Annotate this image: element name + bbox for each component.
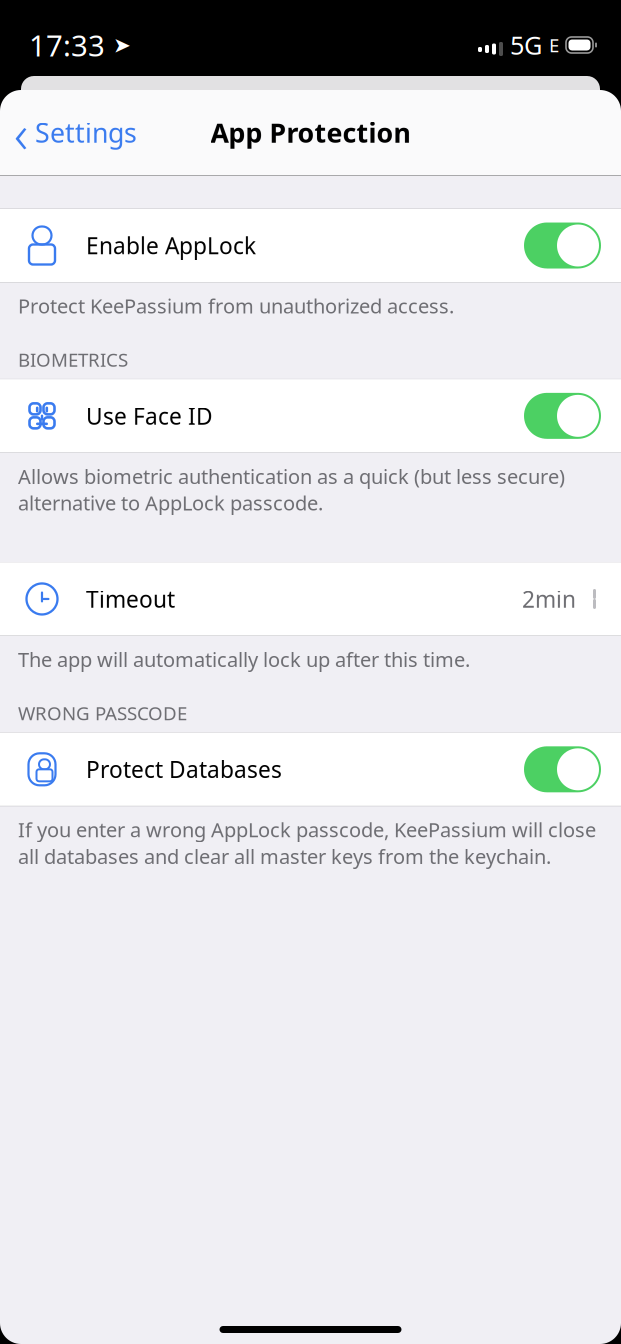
staticText: Use Face ID bbox=[86, 401, 213, 431]
staticText: 5G bbox=[510, 28, 542, 62]
staticText: Protect KeePassium from unauthorized acc… bbox=[18, 292, 454, 319]
button[interactable]: Enable AppLock bbox=[0, 209, 621, 282]
staticText: Timeout bbox=[86, 584, 175, 614]
staticText: Enable AppLock bbox=[86, 230, 256, 260]
button[interactable]: ‹ bbox=[0, 91, 147, 174]
staticText: If you enter a wrong AppLock passcode, K… bbox=[18, 816, 596, 869]
staticText: Allows biometric authentication as a qui… bbox=[18, 463, 565, 516]
button[interactable]: Timeout bbox=[0, 562, 621, 635]
staticText: 2min bbox=[522, 584, 576, 614]
button[interactable]: Use Face ID bbox=[0, 379, 621, 452]
staticText: 17:33 bbox=[29, 25, 105, 64]
staticText: E bbox=[549, 33, 559, 57]
staticText: Settings bbox=[35, 115, 137, 150]
staticText: ‹ bbox=[14, 97, 28, 168]
staticText: BIOMETRICS bbox=[18, 347, 128, 372]
staticText: Protect Databases bbox=[86, 754, 282, 784]
staticText: The app will automatically lock up after… bbox=[18, 646, 470, 673]
staticText: App Protection bbox=[210, 115, 410, 150]
staticText: ➤ bbox=[113, 33, 131, 57]
staticText: WRONG PASSCODE bbox=[18, 700, 187, 725]
button[interactable]: Protect Databases bbox=[0, 733, 621, 806]
